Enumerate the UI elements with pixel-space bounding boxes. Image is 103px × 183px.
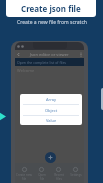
button[interactable]: Recent files [50, 167, 67, 181]
button[interactable]: Add new item [45, 152, 56, 163]
staticText: Create json file [21, 3, 81, 14]
staticText: Json editor or viewer [30, 52, 69, 57]
staticText: Welcome [17, 68, 35, 73]
button[interactable]: Open file [33, 167, 50, 181]
staticText: Object [45, 108, 58, 113]
button[interactable]: Create new file [15, 167, 33, 181]
other: More options [80, 52, 82, 57]
staticText: Value [46, 118, 57, 123]
button[interactable]: Value [20, 116, 82, 125]
button[interactable]: Create json file [6, 0, 96, 17]
button[interactable]: Settings [67, 167, 84, 177]
staticText: Create a new file from scratch [17, 19, 87, 26]
staticText: Array [46, 97, 57, 102]
other: Back [17, 53, 20, 56]
staticText: Recent files [54, 173, 64, 181]
button[interactable]: Object [20, 105, 82, 115]
button[interactable]: Open the complete list of files [15, 58, 84, 66]
staticText: Create new file [16, 173, 32, 181]
staticText: Settings [70, 173, 82, 177]
staticText: Open file [38, 173, 46, 181]
button[interactable]: Array [20, 94, 82, 104]
staticText: Open the complete list of files [17, 60, 67, 65]
